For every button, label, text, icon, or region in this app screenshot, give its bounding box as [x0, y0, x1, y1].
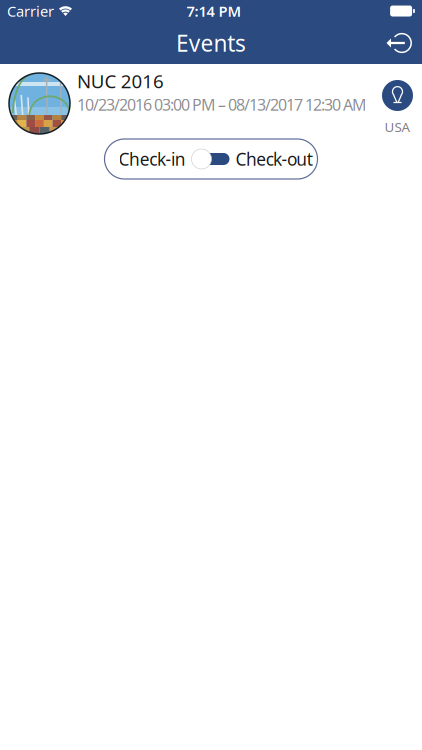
staticText: Check-in: [118, 147, 186, 170]
button[interactable]: NUC 2016: [0, 64, 422, 137]
staticText: Events: [176, 28, 246, 58]
button[interactable]: Log out: [379, 25, 419, 60]
staticText: 10/23/2016 03:00 PM – 08/13/2017 12:30 A…: [77, 94, 367, 115]
staticText: Carrier: [7, 1, 54, 21]
staticText: USA: [384, 118, 410, 136]
button[interactable]: Check-in: [104, 139, 317, 179]
staticText: 7:14 PM: [186, 1, 241, 21]
staticText: Check-out: [235, 147, 313, 170]
staticText: NUC 2016: [77, 69, 164, 93]
